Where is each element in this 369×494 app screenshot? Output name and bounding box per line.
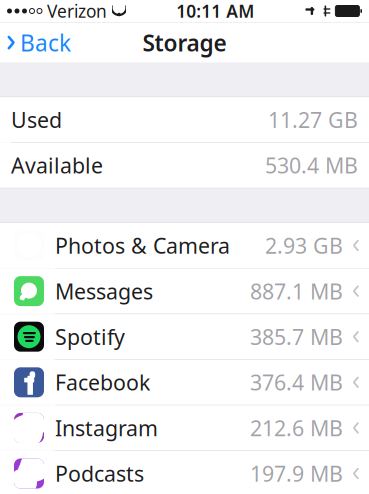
button[interactable]: Messages <box>0 269 369 314</box>
staticText: 197.9 MB <box>250 459 343 488</box>
staticText: Spotify <box>55 322 125 351</box>
button[interactable]: Used <box>0 97 369 142</box>
staticText: 530.4 MB <box>265 151 358 179</box>
staticText: Photos & Camera <box>55 231 230 260</box>
button[interactable]: Podcasts <box>0 451 369 494</box>
staticText: Storage <box>142 27 226 58</box>
button[interactable]: Spotify <box>0 314 369 359</box>
button[interactable]: Available <box>0 143 369 188</box>
staticText: 385.7 MB <box>250 322 343 351</box>
button[interactable]: Instagram <box>0 405 369 450</box>
staticText: Messages <box>55 277 153 305</box>
staticText: Verizon <box>47 0 107 22</box>
button[interactable]: Back <box>0 21 71 64</box>
staticText: 10:11 AM <box>176 0 254 22</box>
staticText: Used <box>11 105 62 134</box>
staticText: 11.27 GB <box>268 105 358 134</box>
staticText: Facebook <box>55 368 150 396</box>
staticText: 376.4 MB <box>250 368 343 396</box>
staticText: 887.1 MB <box>250 277 343 305</box>
staticText: Instagram <box>55 414 158 442</box>
staticText: Back <box>20 27 71 58</box>
staticText: Podcasts <box>55 459 144 488</box>
button[interactable]: Facebook <box>0 360 369 405</box>
button[interactable]: Photos & Camera <box>0 223 369 268</box>
staticText: 2.93 GB <box>265 231 343 260</box>
staticText: Available <box>11 151 103 179</box>
staticText: 212.6 MB <box>250 414 343 442</box>
